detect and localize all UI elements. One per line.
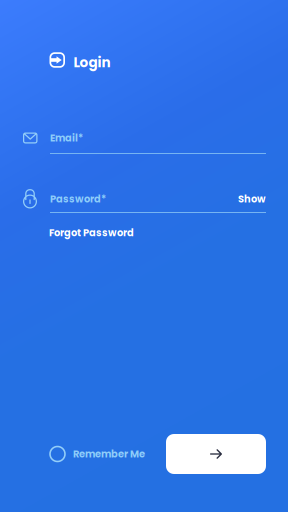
staticText: Login [73, 53, 110, 72]
staticText: Remember Me [73, 447, 145, 461]
button[interactable]: Sign in [166, 434, 266, 474]
staticText: Email* [50, 131, 83, 145]
button[interactable]: Show [238, 192, 266, 206]
button[interactable]: Remember Me [50, 446, 145, 461]
staticText: Show [238, 192, 266, 206]
staticText: Password* [50, 192, 106, 206]
button[interactable]: Forgot Password [49, 226, 134, 240]
staticText: Forgot Password [49, 226, 134, 240]
